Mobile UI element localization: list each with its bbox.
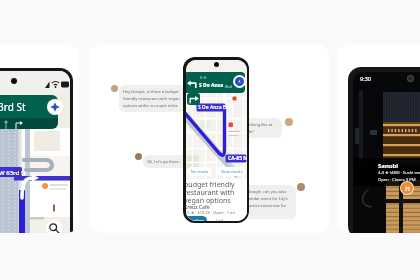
staticText: Kreuz Cafe [186, 204, 210, 211]
button[interactable]: Search [46, 220, 62, 233]
staticText: Open · Closes 9 PM [378, 177, 416, 183]
staticText: 4.5 ★ · $10-20 · Open · 1 mi [186, 210, 235, 215]
button[interactable]: Recenter [46, 200, 62, 216]
button[interactable]: 3rd St [0, 95, 58, 118]
staticText: Ok, let's go there. [147, 159, 180, 164]
staticText: Show results [221, 169, 243, 174]
button[interactable]: Call [211, 216, 228, 221]
staticText: No results [191, 169, 209, 174]
staticText: S De Anza Blvd [198, 104, 234, 111]
button[interactable]: 0 ft [186, 72, 245, 93]
staticText: Blvd [225, 84, 233, 89]
staticText: What's parking like at Kreuz Cafe? [232, 122, 278, 134]
button[interactable]: Navigation direction [233, 75, 245, 88]
button[interactable]: What's parking like at Kreuz Cafe? [228, 118, 282, 138]
staticText: 3rd St [0, 100, 26, 114]
staticText: Hey Google, is there a budget friendly r… [123, 89, 181, 108]
button[interactable]: Next turn [187, 93, 200, 105]
button[interactable]: Restaurant marker [400, 181, 414, 195]
button[interactable]: Ok, let's go there. [143, 155, 189, 168]
button[interactable]: No results [187, 167, 212, 176]
staticText: CA-85 N [228, 155, 247, 162]
staticText: 4.4 ★ (486) · Sushi restaurant [378, 170, 420, 176]
staticText: Sanobi [378, 162, 399, 170]
staticText: Directions [187, 218, 205, 221]
staticText: budget friendly restaurant with vegan op… [186, 180, 235, 205]
staticText: W 63rd St [0, 169, 27, 177]
button[interactable]: Navigation direction [47, 99, 63, 115]
button[interactable]: Hey Google, is there a budget friendly r… [119, 85, 185, 112]
button[interactable]: Oh, hey Google, can you also add a calen… [228, 185, 296, 219]
staticText: 0 ft [200, 75, 207, 81]
staticText: Call [216, 218, 223, 221]
button[interactable]: Show results [217, 167, 246, 176]
button[interactable]: Directions [186, 216, 207, 221]
staticText: 9:30 [360, 75, 371, 82]
staticText: Oh, hey Google, can you also add a calen… [232, 189, 292, 215]
staticText: S De Anza [199, 82, 224, 89]
